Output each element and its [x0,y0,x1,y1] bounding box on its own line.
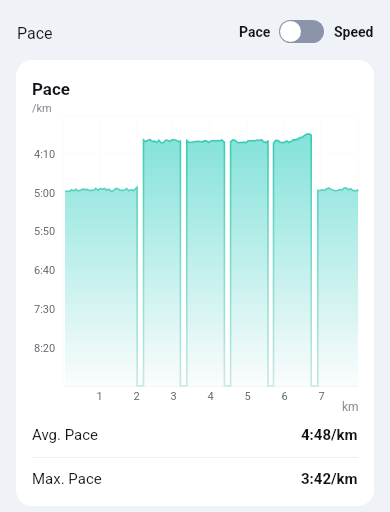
button[interactable]: Speed [334,24,374,40]
staticText: 5:50 [34,225,56,238]
staticText: 7:30 [34,303,56,316]
staticText: 2 [133,390,140,403]
staticText: 3:42/km [301,470,358,488]
staticText: 5:00 [34,187,56,200]
button[interactable]: Pace [239,24,271,40]
staticText: km [342,400,359,414]
staticText: 3 [170,390,177,403]
staticText: Max. Pace [32,470,102,488]
button[interactable]: Max. Pace [16,457,374,501]
staticText: 8:20 [34,342,56,355]
staticText: 4:48/km [301,426,358,444]
button[interactable]: Pace [17,24,53,43]
button[interactable]: Avg. Pace [16,413,374,457]
staticText: 4 [207,390,214,403]
staticText: /km [32,102,52,115]
staticText: 7 [318,390,325,403]
button[interactable]: Toggle pace or speed [279,20,324,43]
staticText: 6:40 [34,264,56,277]
staticText: Pace [32,79,71,99]
staticText: 6 [281,390,288,403]
staticText: 4:10 [34,148,56,161]
staticText: 1 [96,390,103,403]
staticText: Avg. Pace [32,426,99,444]
staticText: 5 [244,390,251,403]
